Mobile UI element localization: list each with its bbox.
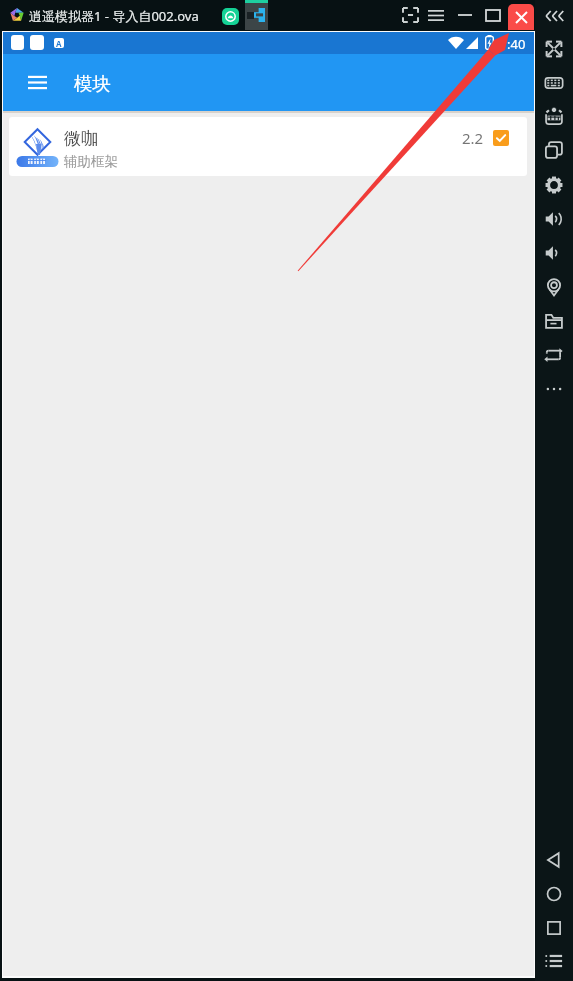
button[interactable]: Minimize — [452, 0, 478, 30]
button[interactable]: Sync — [535, 341, 573, 369]
button[interactable]: Module enabled — [493, 130, 509, 146]
button[interactable]: Maximize — [480, 0, 506, 30]
button[interactable]: Multi window — [535, 136, 573, 164]
button[interactable]: Recent apps — [535, 914, 573, 942]
button[interactable]: Install APK — [535, 102, 573, 130]
button[interactable]: Location — [535, 273, 573, 301]
staticText: 模块 — [74, 72, 111, 95]
button[interactable]: Task list — [535, 947, 573, 975]
button[interactable]: Fullscreen — [535, 35, 573, 63]
button[interactable]: Menu — [423, 0, 449, 30]
button[interactable]: Screenshot — [397, 0, 423, 30]
button[interactable]: 微咖 — [9, 117, 527, 176]
staticText: 微咖 — [64, 128, 98, 149]
button[interactable]: Settings — [535, 171, 573, 199]
button[interactable]: Collapse toolbar — [535, 2, 573, 30]
button[interactable]: Home — [535, 880, 573, 908]
staticText: A — [56, 38, 62, 48]
button[interactable]: Keyboard — [535, 69, 573, 97]
button[interactable]: Back — [535, 846, 573, 874]
button[interactable]: Close — [508, 4, 534, 30]
button[interactable]: Emulator tab — [245, 0, 268, 30]
button[interactable]: App — [222, 8, 239, 25]
button[interactable]: More options — [535, 375, 573, 403]
button[interactable]: Open navigation drawer — [17, 54, 57, 111]
staticText: 2.2 — [462, 128, 484, 148]
button[interactable]: Shared folder — [535, 307, 573, 335]
staticText: 逍遥模拟器1 - 导入自002.ova — [29, 7, 199, 25]
button[interactable]: Volume up — [535, 205, 573, 233]
staticText: 辅助框架 — [64, 153, 118, 170]
button[interactable]: Volume down — [535, 239, 573, 267]
staticText: :40 — [507, 35, 526, 53]
